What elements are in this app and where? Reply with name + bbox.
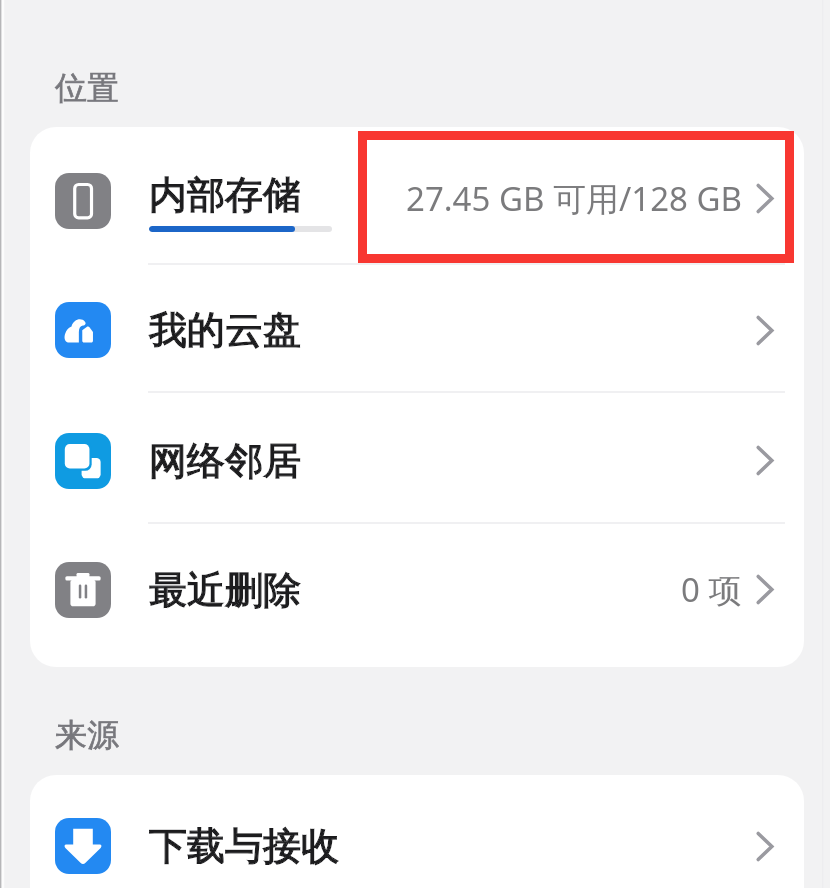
- staticText: 27.45 GB 可用/128 GB: [406, 176, 742, 221]
- button[interactable]: 最近删除: [30, 522, 804, 667]
- button[interactable]: 内部存储: [30, 127, 804, 263]
- staticText: 最近删除: [149, 566, 301, 614]
- staticText: 我的云盘: [149, 306, 301, 354]
- button[interactable]: 下载与接收: [30, 775, 804, 888]
- staticText: 网络邻居: [149, 437, 301, 485]
- button[interactable]: 我的云盘: [30, 263, 804, 391]
- staticText: 下载与接收: [149, 822, 339, 870]
- staticText: 内部存储: [149, 171, 301, 219]
- staticText: 位置: [55, 68, 119, 108]
- staticText: 来源: [55, 715, 119, 755]
- button[interactable]: 网络邻居: [30, 391, 804, 522]
- staticText: 0 项: [681, 567, 742, 612]
